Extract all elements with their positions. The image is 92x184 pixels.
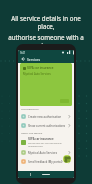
- staticText: Services: [27, 57, 41, 62]
- button[interactable]: Show current authorisations: [18, 121, 74, 130]
- staticText: Service info for you and vehicle: [28, 142, 62, 145]
- button[interactable]: Home: [42, 174, 50, 175]
- staticText: All service details in one place,: [5, 14, 87, 30]
- staticText: Create new authorisation: [28, 115, 62, 119]
- button[interactable]: SEPA car insurance: [20, 63, 72, 106]
- button[interactable]: SEPA car insurance: [18, 136, 74, 148]
- button[interactable]: Create new authorisation: [18, 112, 74, 121]
- button[interactable]: Send feedback (My portal): [18, 157, 74, 166]
- staticText: ABOUT THE SERVICE: [21, 132, 43, 135]
- staticText: SEPA car insurance: [27, 66, 54, 70]
- staticText: manufacturer: [28, 145, 43, 148]
- staticText: Send feedback (My portal): [28, 160, 63, 164]
- staticText: Show current authorisations: [28, 124, 66, 128]
- staticText: SEPA car insurance: [28, 137, 54, 141]
- button[interactable]: Scan QR code: [63, 155, 71, 163]
- staticText: AUTHORISATION: [21, 108, 39, 111]
- staticText: authorise someone with a tap: [5, 33, 87, 49]
- staticText: 9:41: [20, 51, 26, 55]
- button[interactable]: Back: [20, 56, 26, 62]
- staticText: Mystical Auto Services: [28, 151, 58, 155]
- button[interactable]: Mystical Auto Services: [18, 148, 74, 157]
- staticText: Mystical Auto Services: [23, 72, 51, 76]
